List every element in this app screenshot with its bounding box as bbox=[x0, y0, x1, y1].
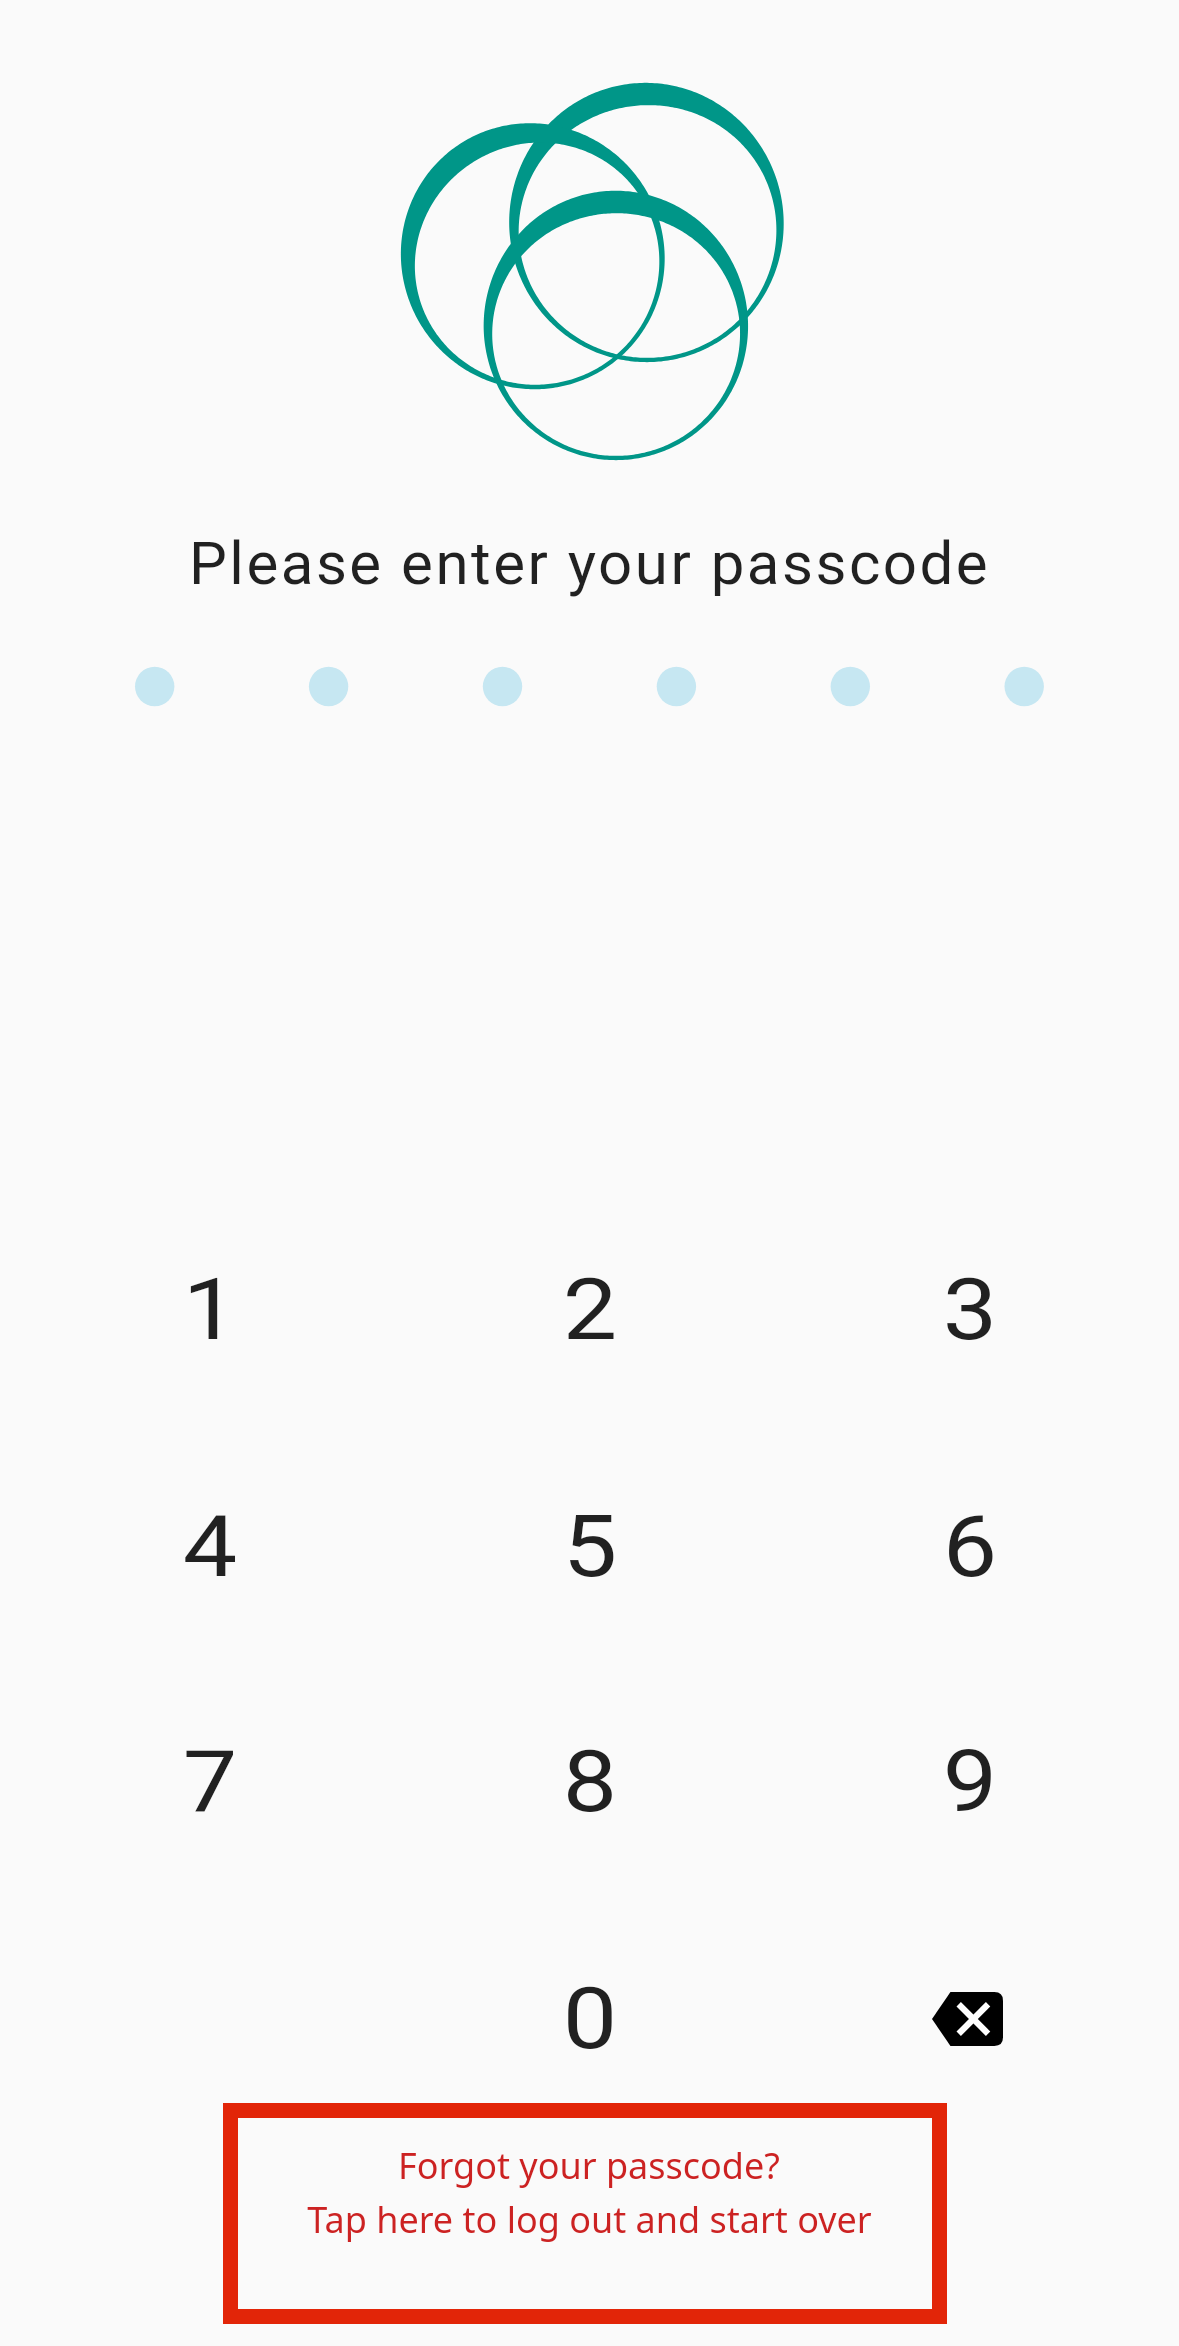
staticText: 1 bbox=[183, 1260, 237, 1360]
button[interactable]: 3 bbox=[870, 1210, 1070, 1410]
staticText: Forgot your passcode? bbox=[398, 2141, 780, 2190]
button[interactable]: 7 bbox=[110, 1682, 310, 1882]
button[interactable]: 4 bbox=[110, 1447, 310, 1647]
button[interactable]: 5 bbox=[490, 1447, 690, 1647]
staticText: 7 bbox=[183, 1732, 237, 1832]
button[interactable]: 9 bbox=[870, 1682, 1070, 1882]
staticText: 9 bbox=[943, 1732, 997, 1832]
staticText: 8 bbox=[563, 1732, 617, 1832]
staticText: 6 bbox=[943, 1497, 997, 1597]
button[interactable]: 1 bbox=[110, 1210, 310, 1410]
button[interactable]: 8 bbox=[490, 1682, 690, 1882]
button[interactable]: 0 bbox=[490, 1919, 690, 2119]
button[interactable]: Backspace bbox=[870, 1919, 1070, 2119]
staticText: Please enter your passcode bbox=[189, 528, 991, 598]
button[interactable]: Forgot your passcode? bbox=[223, 2103, 947, 2324]
staticText: 3 bbox=[943, 1260, 997, 1360]
staticText: 4 bbox=[183, 1497, 237, 1597]
staticText: 0 bbox=[563, 1969, 617, 2069]
staticText: Tap here to log out and start over bbox=[307, 2195, 872, 2244]
button[interactable]: 2 bbox=[490, 1210, 690, 1410]
staticText: 2 bbox=[563, 1260, 617, 1360]
staticText: 5 bbox=[563, 1497, 617, 1597]
button[interactable]: 6 bbox=[870, 1447, 1070, 1647]
